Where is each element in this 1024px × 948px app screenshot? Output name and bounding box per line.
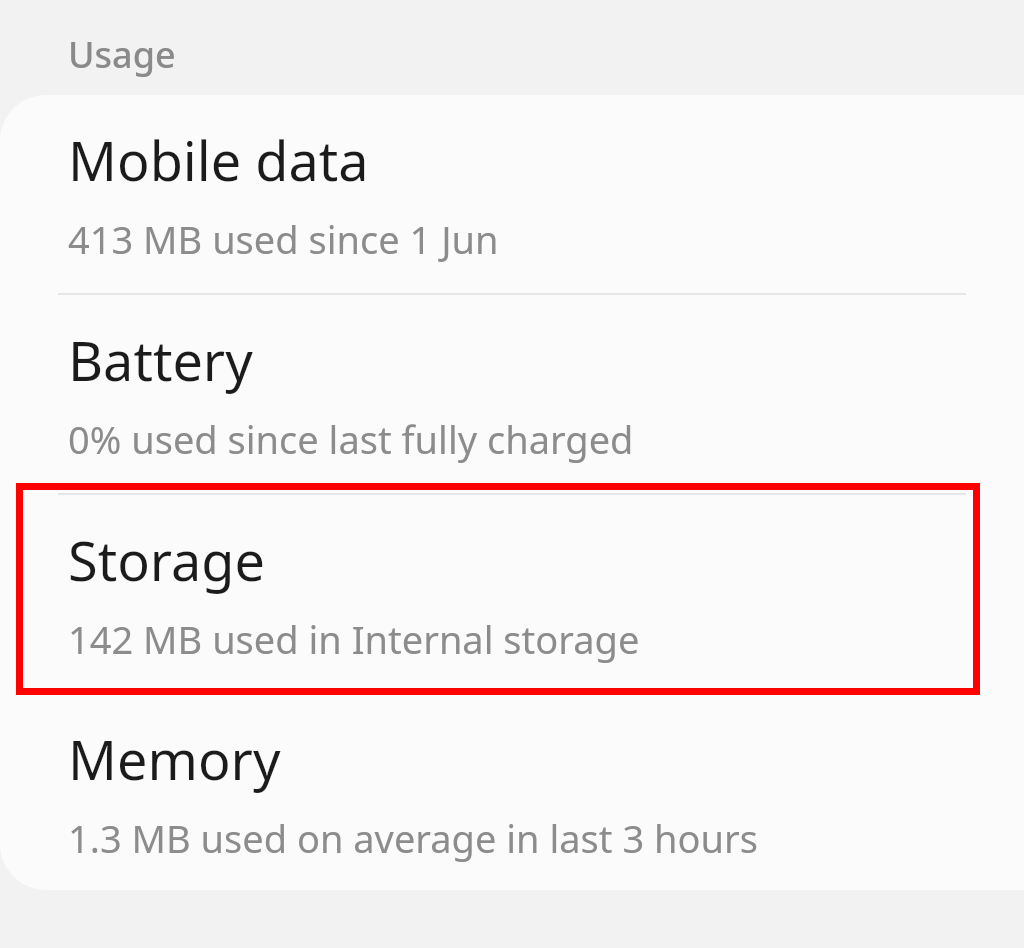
staticText: Battery bbox=[68, 323, 253, 397]
button[interactable]: Battery bbox=[0, 295, 1024, 493]
button[interactable]: Mobile data bbox=[0, 95, 1024, 293]
staticText: Usage bbox=[68, 30, 176, 79]
button[interactable]: Storage bbox=[0, 495, 1024, 693]
staticText: Memory bbox=[68, 722, 281, 796]
staticText: 1.3 MB used on average in last 3 hours bbox=[68, 812, 758, 864]
staticText: Mobile data bbox=[68, 123, 369, 197]
staticText: 413 MB used since 1 Jun bbox=[68, 213, 499, 265]
staticText: Storage bbox=[68, 523, 265, 597]
staticText: 142 MB used in Internal storage bbox=[68, 613, 640, 665]
staticText: 0% used since last fully charged bbox=[68, 413, 634, 465]
button[interactable]: Memory bbox=[0, 695, 1024, 890]
